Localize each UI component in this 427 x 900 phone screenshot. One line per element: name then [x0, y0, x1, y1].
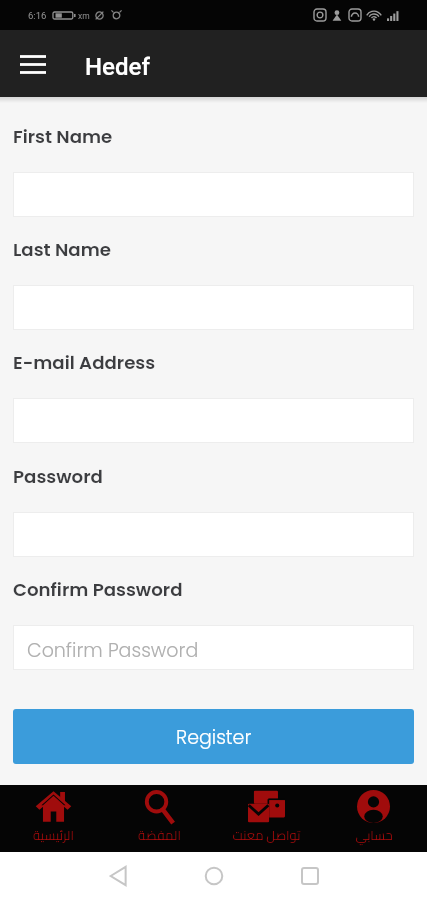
staticText: 6:16	[28, 10, 47, 21]
staticText: تواصل معنت	[232, 823, 301, 847]
other: Home	[35, 790, 72, 823]
button[interactable]: Recent apps	[286, 852, 334, 900]
button[interactable]: Home	[190, 852, 238, 900]
button[interactable]: Contact us	[213, 785, 320, 852]
button[interactable]: Menu	[11, 42, 55, 86]
button[interactable]	[13, 285, 414, 330]
staticText: حسابي	[355, 823, 393, 847]
button[interactable]: Register	[13, 709, 414, 764]
staticText: Password	[13, 464, 103, 489]
staticText: Confirm Password	[13, 577, 183, 602]
button[interactable]: Home	[0, 785, 106, 852]
staticText: الرئيسية	[33, 823, 74, 847]
button[interactable]	[13, 398, 414, 443]
staticText: Hedef	[85, 53, 150, 81]
staticText: E-mail Address	[13, 350, 156, 375]
button[interactable]: Account	[320, 785, 427, 852]
other: Account	[355, 790, 392, 823]
button[interactable]	[13, 512, 414, 557]
button[interactable]: Back	[94, 852, 142, 900]
button[interactable]: Search	[106, 785, 213, 852]
other: Search	[141, 790, 178, 823]
staticText: Confirm Password	[27, 637, 199, 664]
button[interactable]: Confirm Password	[13, 625, 414, 670]
button[interactable]	[13, 172, 414, 217]
staticText: المفضة	[138, 823, 181, 847]
staticText: Register	[176, 724, 252, 751]
other: Contact us	[248, 790, 285, 823]
staticText: Last Name	[13, 237, 111, 262]
staticText: xm	[78, 11, 90, 21]
staticText: First Name	[13, 124, 113, 149]
